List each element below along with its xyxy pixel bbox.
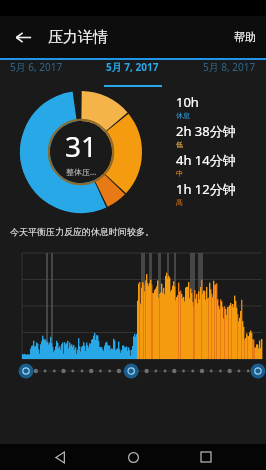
staticText: 中	[176, 169, 183, 178]
button[interactable]: 5月 7, 2017	[88, 60, 177, 74]
staticText: 5月 6, 2017	[10, 60, 63, 74]
staticText: 今天平衡压力反应的休息时间较多。	[10, 226, 154, 237]
staticText: 5月 7, 2017	[106, 60, 159, 74]
button[interactable]: Back	[47, 444, 73, 470]
staticText: 压力详情	[48, 28, 108, 47]
staticText: 帮助	[234, 30, 256, 44]
staticText: 低	[176, 140, 183, 149]
staticText: 5月 8, 2017	[203, 60, 256, 74]
button[interactable]: Home	[120, 444, 146, 470]
staticText: 1h 12分钟	[176, 180, 236, 198]
button[interactable]: 帮助	[224, 22, 266, 52]
button[interactable]: Back	[6, 20, 40, 54]
staticText: 31	[65, 127, 98, 165]
staticText: 10h	[176, 93, 199, 111]
staticText: 2h 38分钟	[176, 122, 236, 140]
staticText: 4h 14分钟	[176, 151, 236, 169]
button[interactable]: 5月 8, 2017	[177, 60, 266, 74]
staticText: 休息	[176, 111, 190, 120]
staticText: 整体压…	[66, 166, 97, 177]
button[interactable]: 5月 6, 2017	[0, 60, 88, 74]
staticText: 高	[176, 198, 183, 207]
button[interactable]: Recent apps	[193, 444, 219, 470]
